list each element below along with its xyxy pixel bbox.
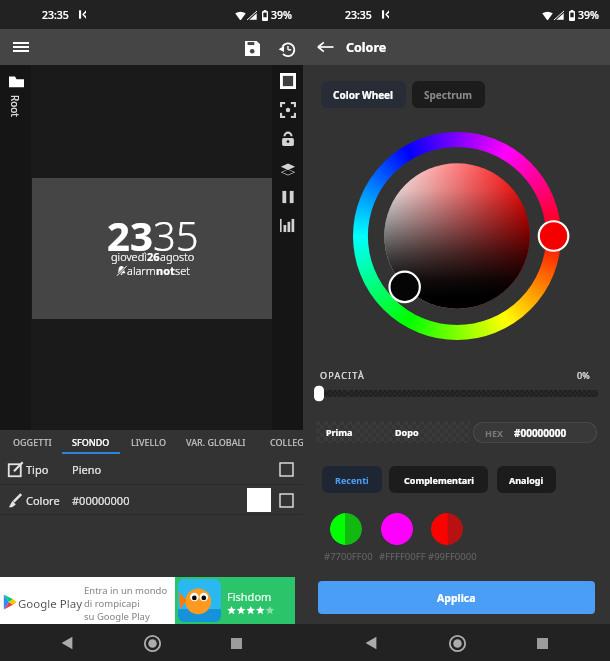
staticText: 23 — [107, 208, 153, 262]
button[interactable]: Back — [49, 625, 85, 661]
staticText: Google Play — [18, 596, 83, 612]
staticText: 0% — [577, 369, 590, 381]
staticText: Colore — [346, 39, 387, 56]
staticText: VAR. GLOBALI — [186, 436, 246, 448]
button[interactable]: SFONDO — [62, 430, 120, 454]
button[interactable]: Home — [134, 625, 170, 661]
button[interactable]: Recenti — [322, 466, 382, 493]
button[interactable]: Recents — [218, 625, 254, 661]
button[interactable]: COLLEGA — [262, 430, 318, 454]
button[interactable]: LIVELLO — [122, 430, 176, 454]
button[interactable]: Tool — [277, 158, 298, 179]
button[interactable]: OGGETTI — [4, 430, 60, 454]
button[interactable]: Spectrum — [412, 81, 485, 108]
staticText: 35 — [153, 208, 199, 262]
staticText: Complementari — [404, 474, 474, 486]
staticText: Color Wheel — [333, 88, 394, 102]
button[interactable]: Home — [439, 625, 475, 661]
staticText: Dopo — [395, 426, 419, 438]
staticText: Prima — [326, 426, 353, 438]
button[interactable]: Save — [240, 36, 265, 61]
button[interactable]: Colore — [0, 485, 303, 515]
button[interactable]: Back — [353, 625, 389, 661]
button[interactable]: Menu — [11, 37, 31, 57]
staticText: #7700FF00 — [324, 550, 373, 563]
staticText: Tipo — [26, 462, 49, 477]
staticText: Pieno — [72, 462, 102, 477]
button[interactable]: Tool — [277, 99, 298, 120]
staticText: HEX — [485, 427, 503, 439]
staticText: not — [156, 263, 175, 278]
staticText: COLLEGA — [270, 436, 310, 448]
staticText: 39% — [271, 8, 292, 22]
staticText: #00000000 — [72, 493, 130, 508]
button[interactable]: Color Wheel — [321, 81, 406, 108]
button[interactable]: HEX — [473, 422, 597, 443]
staticText: #00000000 — [514, 426, 567, 440]
button[interactable]: Color swatch — [381, 513, 413, 545]
staticText: Spectrum — [424, 88, 473, 102]
staticText: 23:35 — [345, 8, 372, 22]
button[interactable]: VAR. GLOBALI — [178, 430, 254, 454]
staticText: 39% — [578, 8, 599, 22]
staticText: LIVELLO — [131, 436, 167, 448]
staticText: set — [175, 263, 190, 278]
staticText: OPACITÀ — [320, 369, 365, 381]
button[interactable]: Tool — [277, 128, 298, 149]
button[interactable]: Tipo — [0, 454, 303, 484]
button[interactable]: Applica — [318, 581, 595, 614]
button[interactable]: History — [274, 36, 299, 61]
staticText: Entra in un mondo di rompicapi su Google… — [84, 584, 168, 623]
button[interactable]: Color swatch — [431, 513, 463, 545]
button[interactable]: Complementari — [389, 466, 488, 493]
staticText: Recenti — [335, 474, 369, 486]
staticText: OGGETTI — [13, 436, 52, 448]
button[interactable]: Tool — [277, 214, 298, 235]
staticText: giovedì — [111, 249, 147, 264]
staticText: Analogi — [509, 474, 544, 486]
staticText: #FFFF00FF — [379, 550, 426, 563]
staticText: 26 — [147, 249, 160, 264]
staticText: #99FF0000 — [428, 550, 477, 563]
staticText: Colore — [26, 493, 60, 508]
staticText: 23:35 — [42, 8, 69, 22]
staticText: SFONDO — [72, 436, 110, 448]
button[interactable]: Back — [315, 37, 335, 57]
staticText: Root — [8, 95, 22, 117]
staticText: Applica — [437, 591, 476, 605]
button[interactable]: Tool — [277, 186, 298, 207]
button[interactable]: Analogi — [497, 466, 556, 493]
staticText: alarm — [127, 263, 156, 278]
button[interactable]: Tool — [277, 70, 298, 91]
button[interactable]: Recents — [524, 625, 560, 661]
button[interactable]: 23 — [32, 178, 273, 319]
staticText: agosto — [160, 249, 195, 264]
staticText: Fishdom — [227, 589, 272, 604]
button[interactable]: Color swatch — [330, 513, 362, 545]
